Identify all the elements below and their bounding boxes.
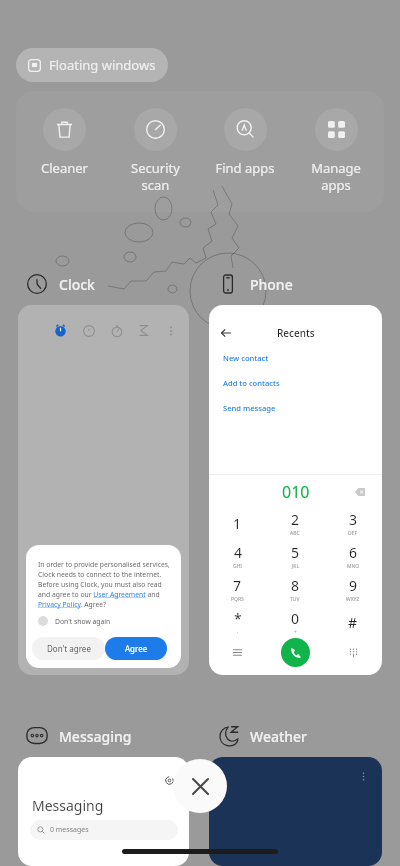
staticText: 2 <box>291 510 300 529</box>
button[interactable]: Clock <box>26 273 95 295</box>
button[interactable]: Messaging <box>26 725 132 747</box>
staticText: In order to provide personalised service… <box>38 560 173 609</box>
staticText: Cleaner <box>41 159 88 177</box>
button[interactable]: Weather <box>217 725 308 747</box>
button[interactable]: # <box>324 606 382 639</box>
staticText: Messaging <box>32 796 104 815</box>
staticText: 3 <box>349 510 358 529</box>
button[interactable]: Call log <box>209 632 266 672</box>
staticText: # <box>348 613 358 632</box>
staticText: JKL <box>292 563 300 570</box>
button[interactable]: Don't agree <box>32 637 105 660</box>
staticText: Security scan <box>131 159 180 194</box>
button[interactable]: Close all <box>173 759 227 813</box>
staticText: New contact <box>223 353 269 363</box>
button[interactable]: Account <box>18 757 189 866</box>
button[interactable]: 3 <box>324 507 382 540</box>
button[interactable]: Backspace <box>352 484 368 500</box>
staticText: MNO <box>347 563 360 570</box>
staticText: 5 <box>291 543 300 562</box>
staticText: Weather <box>250 727 308 746</box>
button[interactable]: 2 <box>266 507 324 540</box>
staticText: Recents <box>277 326 315 340</box>
button[interactable]: Phone <box>217 273 293 295</box>
button[interactable]: 1 <box>209 507 266 540</box>
staticText: Add to contacts <box>223 378 280 388</box>
button[interactable]: Recents <box>209 305 382 675</box>
button[interactable]: Agree <box>105 637 167 660</box>
staticText: + <box>294 629 297 636</box>
button[interactable]: 0 messages <box>30 820 178 840</box>
button[interactable]: Account <box>163 774 175 786</box>
staticText: Agree <box>125 643 148 654</box>
staticText: Phone <box>250 275 293 294</box>
staticText: 4 <box>234 543 243 562</box>
button[interactable]: Cleaner <box>19 108 109 177</box>
button[interactable]: 6 <box>324 540 382 573</box>
staticText: Don't show again <box>55 617 111 626</box>
button[interactable]: 5 <box>266 540 324 573</box>
staticText: PQRS <box>231 596 244 603</box>
staticText: TUV <box>290 596 300 603</box>
button[interactable]: Floating windows <box>16 48 168 82</box>
staticText: * <box>234 609 242 628</box>
button[interactable]: Back <box>219 326 233 340</box>
button[interactable]: In order to provide personalised service… <box>18 305 189 675</box>
button[interactable]: Find apps <box>200 108 290 177</box>
staticText: 9 <box>349 576 358 595</box>
button[interactable]: Security scan <box>110 108 200 194</box>
staticText: 8 <box>291 576 300 595</box>
staticText: DEF <box>348 530 358 537</box>
staticText: 0 <box>291 609 300 628</box>
staticText: · <box>237 629 239 636</box>
staticText: Manage apps <box>311 159 361 194</box>
button[interactable]: * <box>209 606 266 639</box>
staticText: Find apps <box>215 159 275 177</box>
staticText: Don't agree <box>47 643 91 654</box>
staticText: GHI <box>233 563 243 570</box>
staticText: 0 messages <box>50 825 89 835</box>
staticText: Clock <box>59 275 95 294</box>
button[interactable]: Manage apps <box>291 108 381 194</box>
staticText: 010 <box>282 481 310 503</box>
staticText: 1 <box>233 514 242 533</box>
staticText: WXYZ <box>346 596 360 603</box>
button[interactable]: Keypad <box>324 632 382 672</box>
staticText: 6 <box>349 543 358 562</box>
staticText: Send message <box>223 403 276 413</box>
staticText: Floating windows <box>49 56 156 74</box>
button[interactable]: 8 <box>266 573 324 606</box>
button[interactable]: 4 <box>209 540 266 573</box>
button[interactable]: 0 <box>266 606 324 639</box>
staticText: Messaging <box>59 727 132 746</box>
button[interactable]: More options <box>356 769 370 783</box>
staticText: ABC <box>290 530 300 537</box>
button[interactable]: Call <box>281 638 310 667</box>
button[interactable]: 9 <box>324 573 382 606</box>
button[interactable]: More options <box>209 757 382 866</box>
staticText: 7 <box>233 576 242 595</box>
button[interactable]: 7 <box>209 573 266 606</box>
